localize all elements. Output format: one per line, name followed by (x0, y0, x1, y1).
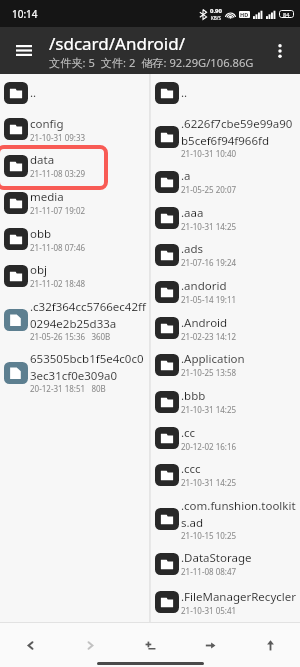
button[interactable]: .andorid (151, 273, 300, 310)
button[interactable]: 653505bcb1f5e4c0c03ec31cf0e309a0 (0, 346, 149, 399)
staticText: 21-10-31 14:25 (181, 477, 237, 488)
staticText: 21-11-02 18:48 (30, 278, 86, 289)
button[interactable]: .Android (151, 310, 300, 346)
button[interactable]: .FileManagerRecycler (151, 582, 300, 622)
button[interactable]: data (0, 147, 149, 184)
button[interactable]: obj (0, 257, 149, 294)
staticText: KB/S (211, 15, 221, 21)
staticText: 21-10-31 10:40 (181, 148, 237, 159)
staticText: 21-07-16 19:24 (181, 257, 237, 268)
staticText: .DataStorage (181, 550, 252, 566)
staticText: config (30, 116, 64, 132)
staticText: 21-10-31 05:41 (181, 605, 237, 616)
staticText: .6226f7cbe59e99a90b5cef6f94f966fd (181, 116, 299, 148)
button[interactable]: Menu (0, 27, 47, 74)
staticText: .c32f364cc5766ec42ff0294e2b25d33a (30, 299, 148, 331)
staticText: 21-05-14 19:11 (181, 294, 237, 305)
staticText: .bbb (181, 388, 206, 404)
staticText: 21-11-08 07:46 (30, 242, 86, 253)
staticText: media (30, 189, 64, 205)
staticText: 21-10-31 14:25 (181, 221, 237, 232)
staticText: 10:14 (12, 7, 38, 21)
staticText: 21-10-31 14:25 (181, 404, 237, 415)
staticText: .. (30, 85, 37, 101)
staticText: .aaa (181, 205, 204, 221)
button[interactable]: Move (180, 623, 240, 667)
staticText: 20-12-02 16:16 (181, 441, 237, 452)
staticText: /sdcard/Android/ (49, 32, 186, 55)
button[interactable]: Forward (60, 623, 120, 667)
staticText: .. (181, 85, 188, 101)
button[interactable]: .Application (151, 346, 300, 383)
button[interactable]: .ccc (151, 456, 300, 493)
button[interactable]: .. (0, 74, 149, 111)
staticText: obb (30, 226, 52, 242)
staticText: 21-05-26 15:36 360B (30, 331, 111, 342)
button[interactable]: .DataStorage (151, 545, 300, 582)
staticText: 84 (283, 11, 290, 18)
staticText: .Application (181, 351, 245, 367)
button[interactable]: .ads (151, 236, 300, 273)
button[interactable]: Upload (240, 623, 300, 667)
button[interactable]: .aaa (151, 200, 300, 236)
staticText: 文件夹: 5 文件: 2 储存: 92.29G/106.86G (49, 55, 254, 70)
staticText: .a (181, 168, 191, 184)
staticText: 21-10-25 13:58 (181, 367, 237, 378)
button[interactable]: .com.funshion.toolkits.ad (151, 493, 300, 545)
staticText: 20-12-31 18:51 80B (30, 383, 106, 394)
staticText: 21-05-25 20:07 (181, 184, 237, 195)
button[interactable]: .cc (151, 420, 300, 456)
staticText: .ccc (181, 461, 201, 477)
button[interactable]: More options (260, 31, 300, 71)
staticText: .FileManagerRecycler (181, 589, 296, 605)
staticText: 21-02-23 14:12 (181, 331, 237, 342)
staticText: 21-10-15 10:25 (181, 530, 237, 541)
staticText: 21-11-08 08:47 (181, 566, 237, 577)
staticText: 21-11-08 03:29 (30, 168, 86, 179)
staticText: .com.funshion.toolkits.ad (181, 498, 299, 530)
staticText: obj (30, 262, 47, 278)
button[interactable]: New folder (120, 623, 180, 667)
staticText: 21-10-31 09:33 (30, 132, 86, 143)
staticText: HD (240, 11, 249, 18)
button[interactable]: obb (0, 221, 149, 257)
staticText: .andorid (181, 278, 227, 294)
button[interactable]: .bbb (151, 383, 300, 420)
button[interactable]: .6226f7cbe59e99a90b5cef6f94f966fd (151, 111, 300, 163)
staticText: .Android (181, 315, 228, 331)
staticText: 0.90 (210, 7, 222, 15)
button[interactable]: .c32f364cc5766ec42ff0294e2b25d33a (0, 294, 149, 346)
button[interactable]: config (0, 111, 149, 147)
staticText: .ads (181, 241, 204, 257)
staticText: 653505bcb1f5e4c0c03ec31cf0e309a0 (30, 351, 148, 383)
button[interactable]: .. (151, 74, 300, 111)
button[interactable]: Back (0, 623, 60, 667)
staticText: data (30, 152, 55, 168)
staticText: .cc (181, 425, 196, 441)
staticText: 21-11-07 19:02 (30, 205, 86, 216)
button[interactable]: media (0, 184, 149, 221)
button[interactable]: .a (151, 163, 300, 200)
